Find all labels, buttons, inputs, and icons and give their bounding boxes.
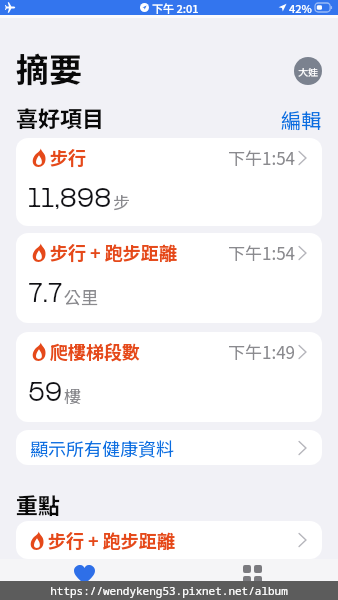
staticText: 重點 [16, 488, 61, 520]
button[interactable]: 步行 + 跑步距離 [16, 521, 322, 559]
staticText: 下午1:54 [228, 145, 296, 170]
staticText: 編輯 [281, 105, 321, 134]
staticText: 下午1:49 [228, 339, 296, 364]
staticText: 爬樓梯段數 [50, 338, 140, 364]
staticText: 公里 [64, 284, 98, 309]
staticText: 步 [113, 189, 130, 214]
staticText: 摘要 [16, 44, 82, 92]
staticText: 喜好項目 [16, 101, 105, 133]
staticText: 顯示所有健康資料 [30, 435, 174, 461]
staticText: 11,898 [28, 180, 112, 215]
staticText: 步行 [50, 144, 86, 170]
button[interactable]: 爬樓梯段數 [16, 332, 322, 422]
button[interactable]: 步行 [16, 138, 322, 226]
staticText: 7.7 [28, 275, 63, 310]
staticText: 步行 + 跑步距離 [48, 527, 175, 553]
staticText: 樓 [64, 383, 81, 408]
staticText: 大娃 [298, 64, 318, 78]
staticText: 下午1:54 [228, 240, 296, 265]
button[interactable]: 步行 + 跑步距離 [16, 233, 322, 323]
button[interactable]: Summary [64, 559, 106, 581]
staticText: 42% [289, 0, 312, 15]
button[interactable]: Browse [232, 559, 274, 581]
button[interactable]: 編輯 [281, 105, 321, 134]
staticText: 59 [28, 374, 63, 409]
button[interactable]: 顯示所有健康資料 [16, 430, 322, 465]
staticText: 下午 2:01 [152, 0, 199, 15]
staticText: https://wendykeng53.pixnet.net/album [50, 583, 288, 598]
button[interactable]: Profile [294, 57, 322, 85]
staticText: 步行 + 跑步距離 [50, 239, 177, 265]
